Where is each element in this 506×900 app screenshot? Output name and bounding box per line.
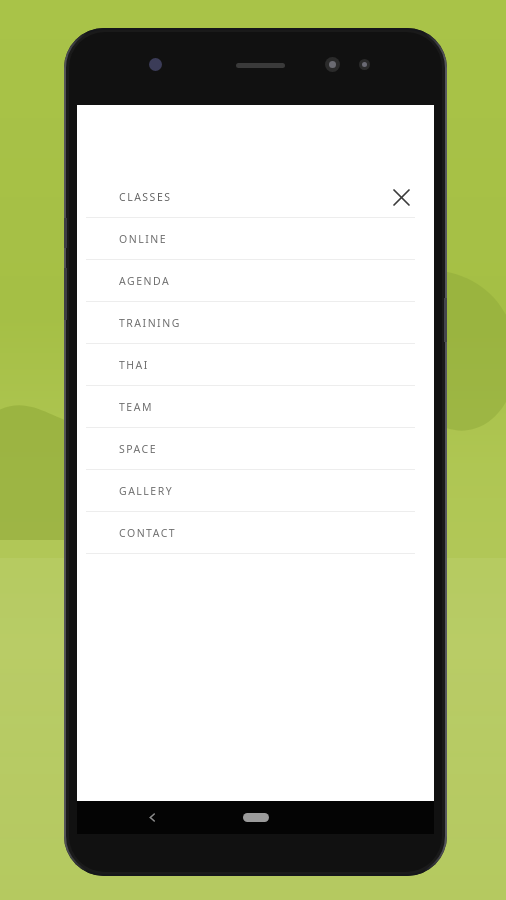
button[interactable]: Back <box>147 801 442 834</box>
button[interactable]: CONTACT <box>77 511 434 553</box>
button[interactable]: AGENDA <box>77 259 434 301</box>
button[interactable]: SPACE <box>77 427 434 469</box>
staticText: ONLINE <box>119 232 168 246</box>
staticText: TEAM <box>119 400 153 414</box>
button[interactable]: Close <box>388 184 414 210</box>
staticText: TRAINING <box>119 316 181 330</box>
staticText: THAI <box>119 358 149 372</box>
button[interactable]: CLASSES <box>77 176 434 217</box>
button[interactable]: Home <box>243 813 269 822</box>
staticText: SPACE <box>119 442 158 456</box>
staticText: CONTACT <box>119 526 177 540</box>
button[interactable]: TRAINING <box>77 301 434 343</box>
button[interactable]: GALLERY <box>77 469 434 511</box>
button[interactable]: ONLINE <box>77 217 434 259</box>
staticText: CLASSES <box>119 190 388 204</box>
staticText: AGENDA <box>119 274 171 288</box>
staticText: GALLERY <box>119 484 174 498</box>
button[interactable]: TEAM <box>77 385 434 427</box>
button[interactable]: THAI <box>77 343 434 385</box>
